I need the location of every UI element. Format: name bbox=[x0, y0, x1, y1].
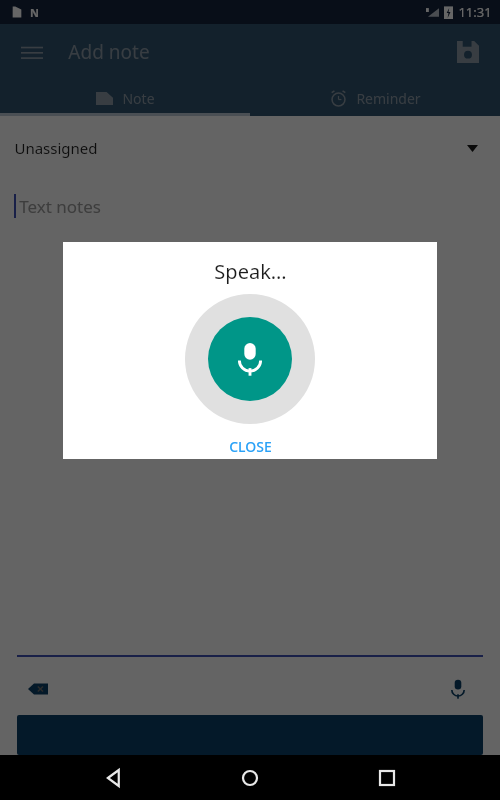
staticText: Speak… bbox=[214, 258, 287, 285]
button[interactable]: Voice input bbox=[442, 673, 474, 705]
button[interactable]: Microphone bbox=[185, 294, 315, 424]
button[interactable]: Backspace bbox=[22, 673, 54, 705]
button[interactable]: Note bbox=[0, 80, 250, 116]
button[interactable]: CLOSE bbox=[63, 434, 437, 459]
staticText: 11:31 bbox=[458, 3, 492, 21]
button[interactable]: Save bbox=[444, 28, 492, 76]
staticText: CLOSE bbox=[229, 437, 272, 456]
staticText: Note bbox=[122, 89, 155, 108]
button[interactable]: Home bbox=[226, 755, 274, 800]
button[interactable]: Reminder bbox=[250, 80, 500, 116]
button[interactable]: Unassigned bbox=[0, 128, 500, 168]
staticText: Reminder bbox=[356, 89, 421, 108]
staticText: Text notes bbox=[19, 195, 101, 218]
button[interactable]: Back bbox=[89, 755, 137, 800]
staticText: Unassigned bbox=[14, 138, 98, 158]
button[interactable]: Menu bbox=[8, 28, 56, 76]
staticText: N bbox=[30, 5, 39, 20]
button[interactable]: Recent apps bbox=[363, 755, 411, 800]
staticText: Add note bbox=[68, 39, 150, 65]
